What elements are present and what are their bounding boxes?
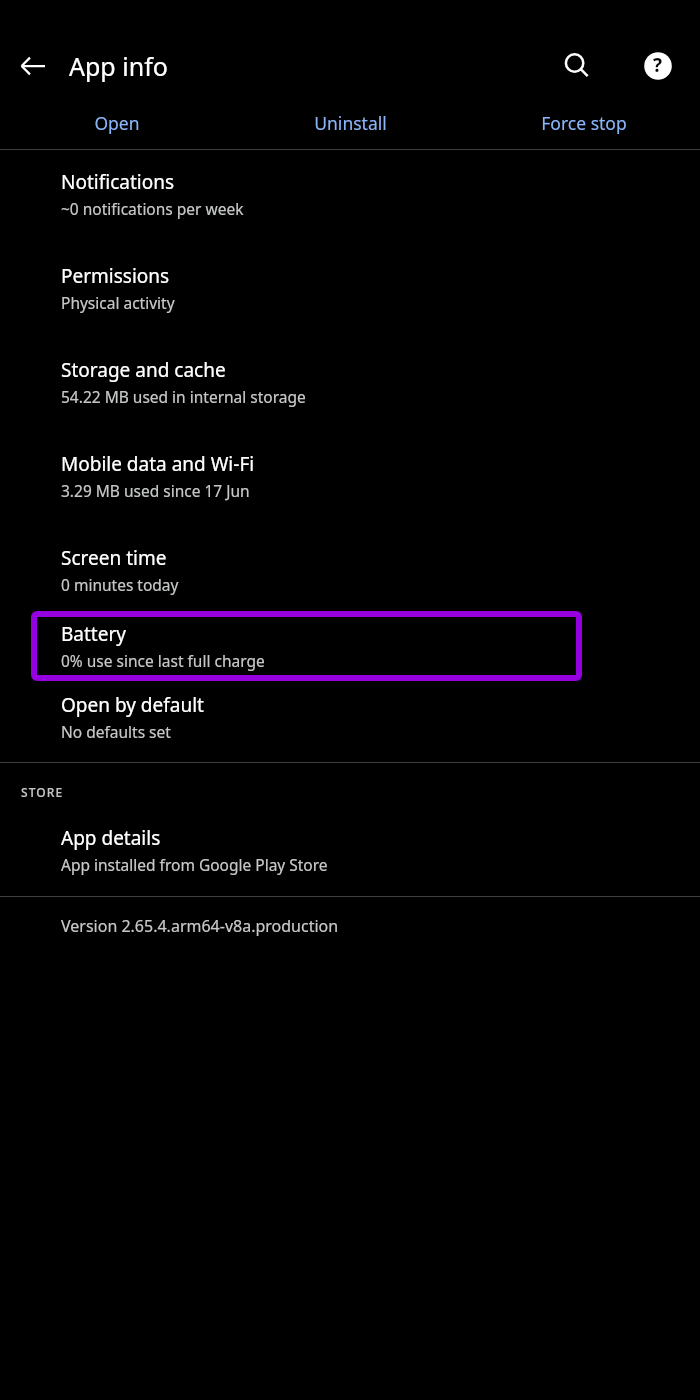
button[interactable]: Permissions [0,241,700,335]
button[interactable]: Search [553,42,601,90]
button[interactable]: Uninstall [234,96,467,149]
button[interactable]: Battery [31,611,582,681]
staticText: Open by default [61,692,204,718]
button[interactable]: Back [10,43,56,89]
staticText: App info [69,49,168,83]
staticText: Open [94,111,140,135]
staticText: 0% use since last full charge [61,650,265,671]
staticText: No defaults set [61,721,171,742]
staticText: 3.29 MB used since 17 Jun [61,480,250,501]
staticText: ~0 notifications per week [61,198,244,219]
staticText: Permissions [61,263,170,289]
button[interactable]: Force stop [467,96,700,149]
button[interactable]: Mobile data and Wi-Fi [0,429,700,523]
staticText: App installed from Google Play Store [61,854,328,875]
staticText: Force stop [541,111,627,135]
button[interactable]: Screen time [0,523,700,611]
staticText: Battery [61,621,126,647]
staticText: Notifications [61,169,175,195]
button[interactable]: Notifications [0,150,700,241]
button[interactable]: Help [634,42,682,90]
staticText: 54.22 MB used in internal storage [61,386,306,407]
staticText: Physical activity [61,292,175,313]
staticText: STORE [21,784,64,800]
staticText: Uninstall [314,111,387,135]
button[interactable]: Storage and cache [0,335,700,429]
button[interactable]: Open [0,96,234,149]
staticText: 0 minutes today [61,574,179,595]
staticText: ? [653,52,663,78]
staticText: Storage and cache [61,357,226,383]
button[interactable]: App details [0,806,700,896]
button[interactable]: Open by default [0,681,700,762]
staticText: Screen time [61,545,167,571]
staticText: App details [61,825,161,851]
staticText: Version 2.65.4.arm64-v8a.production [61,915,339,937]
staticText: Mobile data and Wi-Fi [61,451,255,477]
